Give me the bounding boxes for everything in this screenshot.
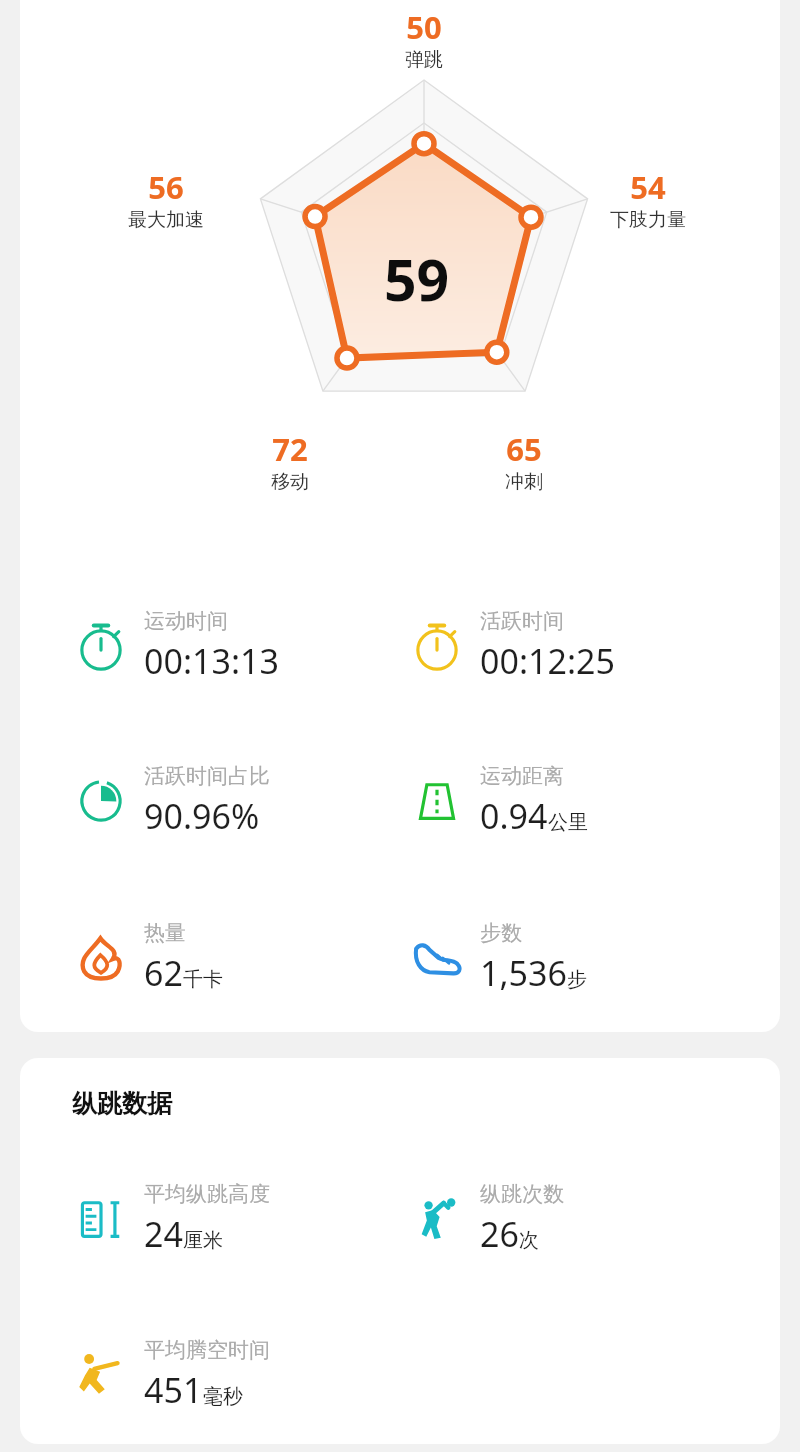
staticText: 最大加速 bbox=[128, 208, 204, 232]
button[interactable]: Jump count bbox=[408, 1170, 738, 1268]
staticText: 运动距离 bbox=[480, 763, 564, 789]
staticText: 1,536 bbox=[480, 950, 567, 996]
staticText: 步 bbox=[567, 967, 587, 992]
button[interactable]: Calories bbox=[72, 909, 402, 1007]
staticText: 65 bbox=[506, 428, 542, 470]
staticText: 纵跳次数 bbox=[480, 1181, 564, 1207]
staticText: 59 bbox=[384, 240, 450, 318]
button[interactable]: Exercise time bbox=[72, 597, 402, 695]
staticText: 90.96% bbox=[144, 793, 260, 839]
staticText: 平均纵跳高度 bbox=[144, 1181, 270, 1207]
staticText: 千卡 bbox=[183, 967, 223, 992]
button[interactable]: Distance bbox=[408, 752, 738, 850]
staticText: 次 bbox=[519, 1228, 539, 1253]
staticText: 毫秒 bbox=[203, 1384, 243, 1409]
staticText: 0.94 bbox=[480, 793, 548, 839]
staticText: 活跃时间 bbox=[480, 608, 564, 634]
staticText: 厘米 bbox=[183, 1228, 223, 1253]
staticText: 62 bbox=[144, 950, 183, 996]
button[interactable]: Avg jump height bbox=[72, 1170, 402, 1268]
staticText: 步数 bbox=[480, 920, 522, 946]
staticText: 54 bbox=[630, 166, 666, 208]
staticText: 移动 bbox=[271, 470, 309, 494]
staticText: 451 bbox=[144, 1367, 203, 1413]
staticText: 热量 bbox=[144, 920, 186, 946]
staticText: 弹跳 bbox=[405, 48, 443, 72]
staticText: 00:13:13 bbox=[144, 638, 279, 684]
staticText: 下肢力量 bbox=[610, 208, 686, 232]
staticText: 冲刺 bbox=[505, 470, 543, 494]
button[interactable]: Avg hang time bbox=[72, 1326, 402, 1424]
button[interactable]: Active ratio bbox=[72, 752, 402, 850]
staticText: 活跃时间占比 bbox=[144, 763, 270, 789]
staticText: 纵跳数据 bbox=[72, 1088, 172, 1119]
staticText: 运动时间 bbox=[144, 608, 228, 634]
staticText: 平均腾空时间 bbox=[144, 1337, 270, 1363]
staticText: 公里 bbox=[548, 810, 588, 835]
staticText: 00:12:25 bbox=[480, 638, 615, 684]
staticText: 24 bbox=[144, 1211, 183, 1257]
staticText: 50 bbox=[406, 6, 442, 48]
staticText: 26 bbox=[480, 1211, 519, 1257]
staticText: 72 bbox=[272, 428, 308, 470]
staticText: 56 bbox=[148, 166, 184, 208]
button[interactable]: Steps bbox=[408, 909, 738, 1007]
button[interactable]: Active time bbox=[408, 597, 738, 695]
